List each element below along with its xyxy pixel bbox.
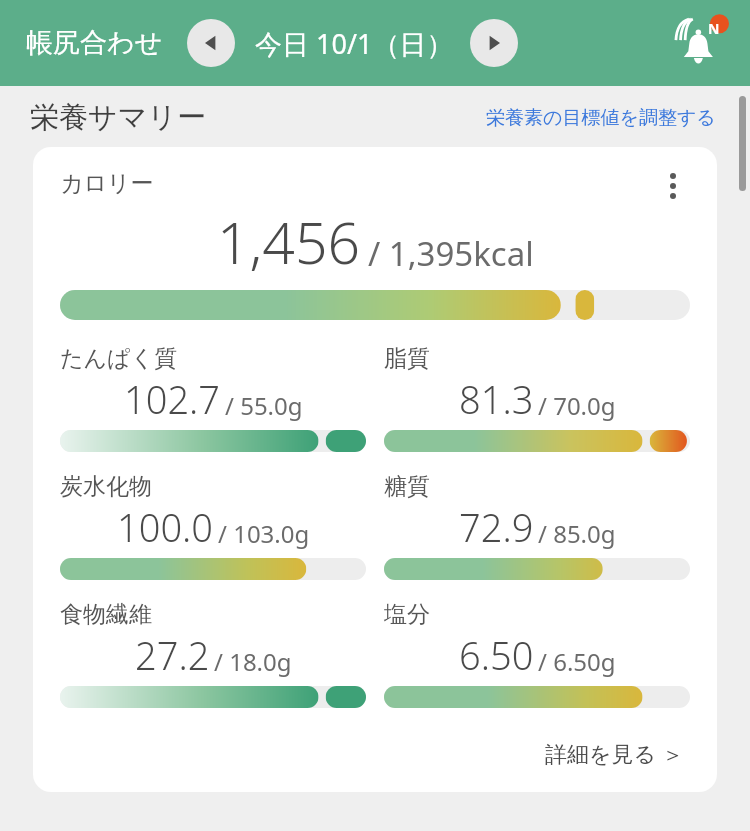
staticText: / 6.50g (538, 645, 616, 678)
staticText: 塩分 (384, 600, 430, 629)
staticText: / 85.0g (538, 517, 616, 550)
button[interactable]: 詳細を見る ＞ (539, 732, 690, 774)
staticText: 6.50 (459, 629, 534, 681)
button[interactable]: 栄養素の目標値を調整する (482, 102, 720, 134)
staticText: 栄養サマリー (30, 99, 207, 136)
button[interactable]: 脂質 (384, 344, 690, 452)
staticText: 81.3 (459, 373, 534, 425)
staticText: 詳細を見る ＞ (545, 738, 684, 768)
button[interactable]: たんぱく質 (60, 344, 366, 452)
staticText: 102.7 (124, 373, 221, 425)
staticText: 脂質 (384, 344, 430, 373)
staticText: / 1,395kcal (368, 231, 534, 276)
staticText: 帳尻合わせ (26, 26, 163, 60)
staticText: 1,456 (217, 203, 361, 281)
staticText: / 103.0g (218, 517, 310, 550)
staticText: / 55.0g (225, 389, 303, 422)
staticText: 27.2 (135, 629, 210, 681)
staticText: たんぱく質 (60, 344, 178, 373)
staticText: / 70.0g (538, 389, 616, 422)
button[interactable]: Notifications (668, 10, 734, 76)
staticText: 栄養素の目標値を調整する (486, 106, 716, 130)
staticText: 今日 10/1（日） (255, 25, 454, 62)
staticText: / 18.0g (214, 645, 292, 678)
staticText: 炭水化物 (60, 472, 152, 501)
button[interactable]: More options (656, 169, 690, 203)
staticText: 糖質 (384, 472, 430, 501)
button[interactable]: Next day (470, 19, 518, 67)
staticText: N (708, 19, 720, 38)
button[interactable]: 塩分 (384, 600, 690, 708)
staticText: カロリー (60, 169, 154, 198)
staticText: 72.9 (459, 501, 534, 553)
staticText: 食物繊維 (60, 600, 152, 629)
button[interactable]: 糖質 (384, 472, 690, 580)
button[interactable]: カロリー (33, 147, 717, 792)
button[interactable]: Previous day (187, 19, 235, 67)
button[interactable]: 炭水化物 (60, 472, 366, 580)
button[interactable]: 食物繊維 (60, 600, 366, 708)
staticText: 100.0 (117, 501, 214, 553)
